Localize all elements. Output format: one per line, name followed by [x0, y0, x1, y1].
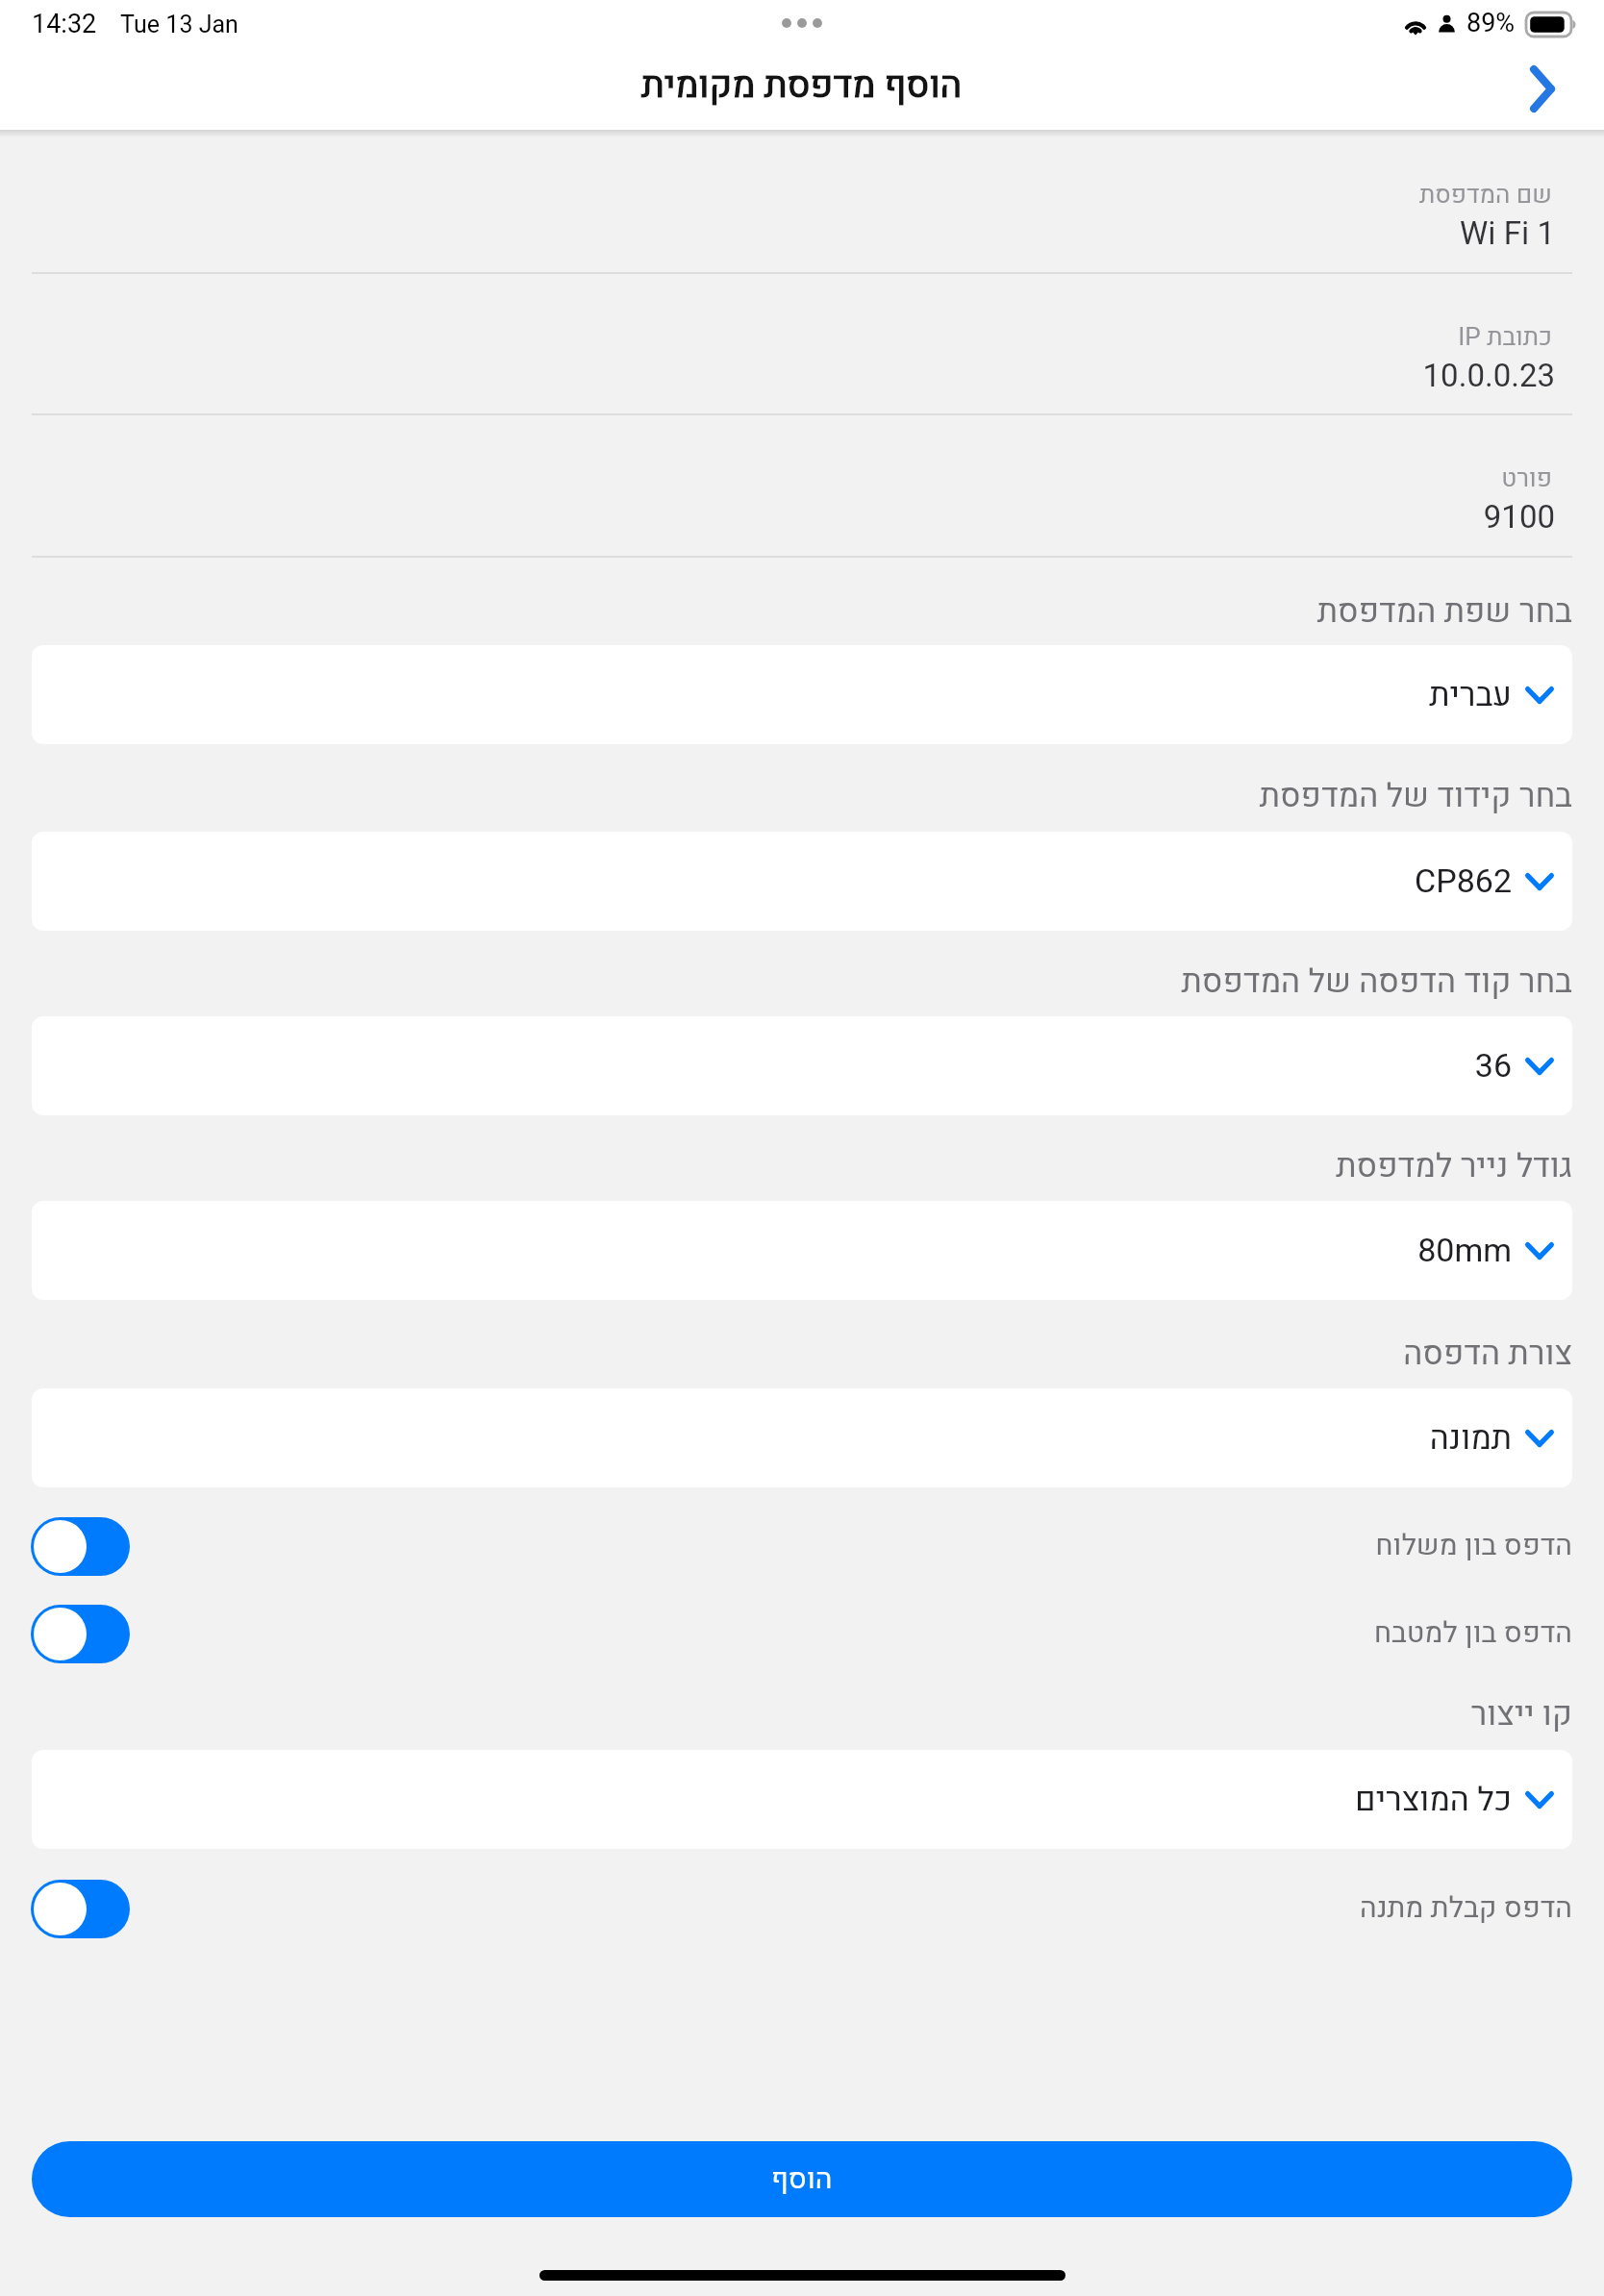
staticText: עברית [1429, 671, 1512, 719]
button[interactable]: הדפס בון למטבח [0, 1590, 1604, 1677]
staticText: 89% [1466, 5, 1516, 43]
button[interactable]: כל המוצרים [32, 1750, 1572, 1849]
staticText: 9100 [0, 494, 1555, 540]
staticText: בחר קידוד של המדפסת [1259, 772, 1572, 820]
staticText: בחר שפת המדפסת [1316, 587, 1572, 636]
button[interactable]: פורט [0, 415, 1604, 558]
button[interactable]: CP862 [32, 832, 1572, 931]
staticText: הדפס בון משלוח [1375, 1525, 1572, 1567]
staticText: הדפס קבלת מתנה [1360, 1887, 1572, 1930]
button[interactable]: הדפס בון משלוח [0, 1503, 1604, 1589]
staticText: כתובת IP [0, 319, 1552, 356]
staticText: כל המוצרים [1355, 1776, 1512, 1824]
staticText: Wi Fi 1 [0, 211, 1555, 257]
button[interactable]: שם המדפסת [0, 132, 1604, 274]
button[interactable]: Back [1510, 53, 1575, 118]
staticText: CP862 [1415, 858, 1512, 906]
staticText: הוסף [771, 2159, 833, 2201]
button[interactable]: הדפס קבלת מתנה [0, 1865, 1604, 1952]
staticText: 14:32 [32, 6, 97, 44]
staticText: פורט [0, 461, 1552, 497]
staticText: 10.0.0.23 [0, 353, 1555, 399]
staticText: קו ייצור [1470, 1690, 1572, 1738]
staticText: בחר קוד הדפסה של המדפסת [1181, 958, 1572, 1006]
staticText: הוסף מדפסת מקומית [641, 59, 963, 112]
button[interactable]: תמונה [32, 1388, 1572, 1487]
staticText: שם המדפסת [0, 177, 1552, 213]
button[interactable]: הוסף [32, 2141, 1572, 2217]
button[interactable]: 80mm [32, 1201, 1572, 1300]
button[interactable]: 36 [32, 1016, 1572, 1115]
staticText: תמונה [1429, 1414, 1512, 1462]
staticText: 80mm [1417, 1227, 1512, 1275]
staticText: Tue 13 Jan [120, 8, 238, 43]
button[interactable]: כתובת IP [0, 274, 1604, 415]
button[interactable]: עברית [32, 645, 1572, 744]
staticText: 36 [1474, 1042, 1512, 1090]
staticText: הדפס בון למטבח [1373, 1612, 1572, 1655]
staticText: גודל נייר למדפסת [1336, 1142, 1572, 1190]
staticText: צורת הדפסה [1403, 1330, 1572, 1378]
